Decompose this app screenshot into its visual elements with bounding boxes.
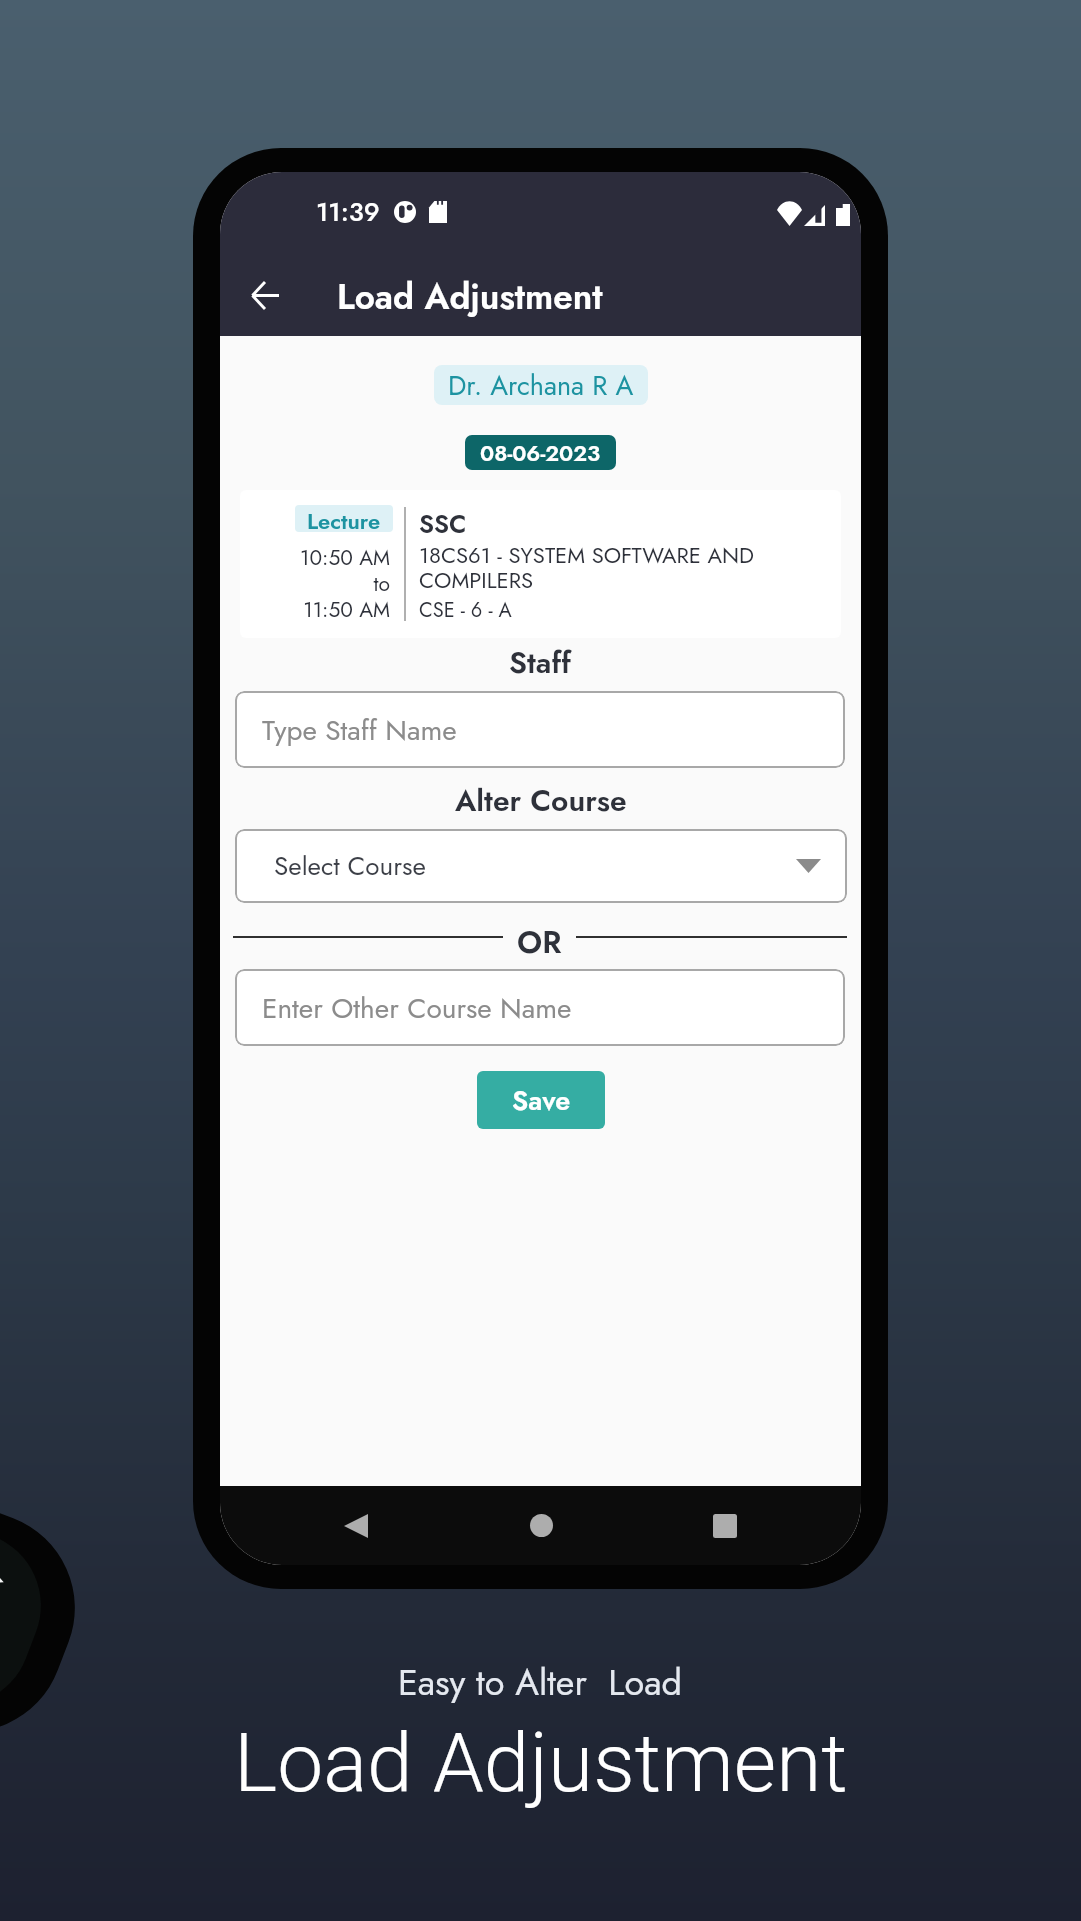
staticText: 18CS61 - SYSTEM SOFTWARE AND COMPILERS — [419, 539, 831, 596]
staticText: Staff — [509, 641, 572, 684]
staticText: Lecture — [307, 505, 381, 532]
button[interactable]: Select Course — [235, 829, 847, 903]
staticText: Enter Other Course Name — [262, 988, 572, 1028]
button[interactable]: 08-06-2023 — [465, 435, 616, 470]
button[interactable]: Type Staff Name — [235, 691, 845, 768]
button[interactable]: Dr. Archana R A — [434, 365, 648, 405]
staticText: CSE - 6 - A — [419, 596, 512, 625]
button[interactable]: Enter Other Course Name — [235, 969, 845, 1046]
button[interactable]: Back — [321, 1486, 391, 1565]
staticText: Load Adjustment — [234, 1715, 848, 1811]
staticText: 11:39 — [316, 193, 380, 231]
button[interactable]: Lecture — [240, 490, 841, 638]
button[interactable]: Save — [477, 1071, 605, 1129]
staticText: 08-06-2023 — [480, 437, 601, 469]
staticText: Dr. Archana R A — [448, 366, 634, 405]
staticText: Type Staff Name — [262, 710, 457, 750]
staticText: Easy to Alter Load — [398, 1656, 683, 1708]
button[interactable]: Back — [235, 265, 295, 325]
button[interactable]: Home — [506, 1486, 576, 1565]
staticText: OR — [517, 920, 562, 954]
staticText: Save — [512, 1081, 571, 1120]
staticText: Load Adjustment — [337, 272, 603, 323]
button[interactable]: Recent apps — [690, 1486, 760, 1565]
staticText: 10:50 AM to 11:50 AM — [240, 543, 390, 625]
staticText: Select Course — [274, 847, 426, 885]
staticText: SSC — [419, 506, 467, 542]
staticText: Alter Course — [455, 779, 627, 822]
